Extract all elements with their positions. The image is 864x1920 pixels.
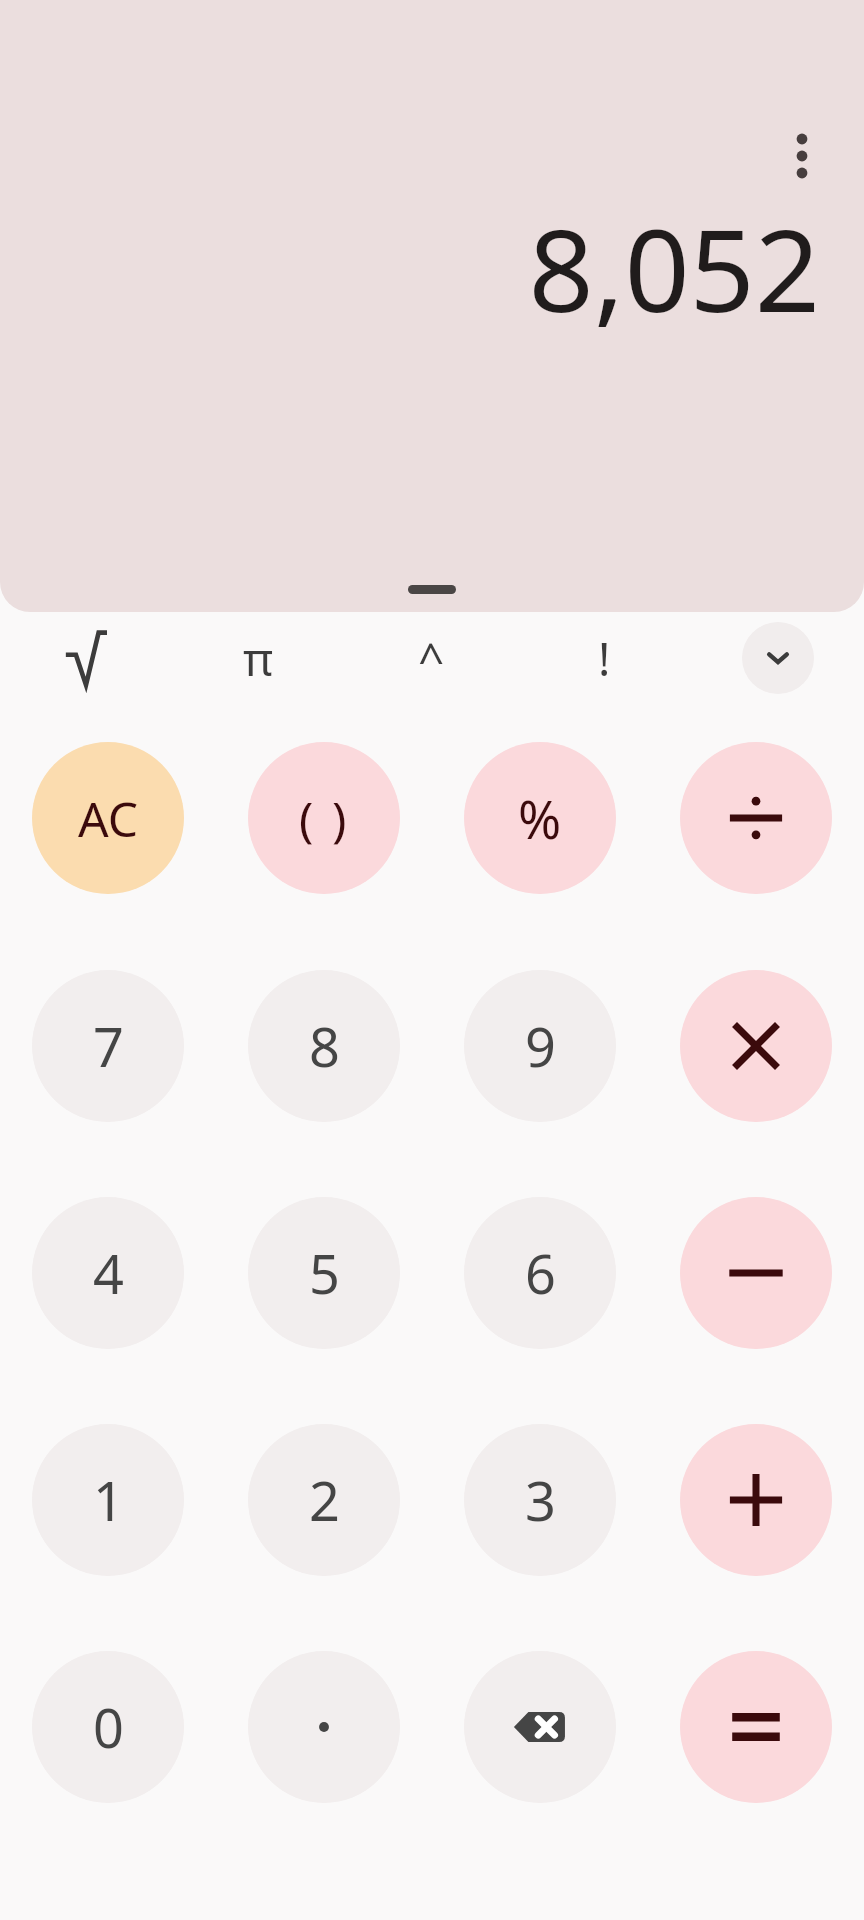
staticText: ! <box>598 627 611 690</box>
staticText: 9 <box>525 1009 556 1083</box>
button[interactable]: More options <box>752 106 852 206</box>
button[interactable]: Equals <box>680 1651 832 1803</box>
staticText: AC <box>78 786 139 851</box>
staticText: 0 <box>93 1690 124 1764</box>
staticText: 7 <box>93 1009 124 1083</box>
button[interactable]: 4 <box>32 1197 184 1349</box>
button[interactable]: Minus <box>680 1197 832 1349</box>
button[interactable]: 5 <box>248 1197 400 1349</box>
button[interactable]: Multiply <box>680 970 832 1122</box>
button[interactable]: 2 <box>248 1424 400 1576</box>
staticText: 2 <box>309 1463 340 1537</box>
staticText: π <box>243 627 274 690</box>
staticText: 5 <box>309 1236 340 1310</box>
button[interactable]: Collapse advanced keys <box>742 622 814 694</box>
staticText: ( ) <box>299 786 350 851</box>
staticText: 6 <box>525 1236 556 1310</box>
button[interactable]: π <box>172 612 345 704</box>
staticText: % <box>518 783 562 854</box>
button[interactable]: 0 <box>32 1651 184 1803</box>
button[interactable]: 9 <box>464 970 616 1122</box>
staticText: 3 <box>525 1463 556 1537</box>
button[interactable]: ! <box>518 612 691 704</box>
button[interactable]: % <box>464 742 616 894</box>
button[interactable]: Plus <box>680 1424 832 1576</box>
staticText: 8 <box>309 1009 340 1083</box>
button[interactable]: 7 <box>32 970 184 1122</box>
button[interactable]: AC <box>32 742 184 894</box>
button[interactable]: 6 <box>464 1197 616 1349</box>
staticText: 4 <box>93 1236 124 1310</box>
button[interactable]: ( ) <box>248 742 400 894</box>
button[interactable]: 3 <box>464 1424 616 1576</box>
button[interactable]: Divide <box>680 742 832 894</box>
button[interactable]: ^ <box>345 612 518 704</box>
button[interactable]: Backspace <box>464 1651 616 1803</box>
staticText: 8,052 <box>40 190 820 345</box>
button[interactable]: Decimal point <box>248 1651 400 1803</box>
button[interactable] <box>0 612 172 704</box>
staticText: 1 <box>93 1463 124 1537</box>
staticText: ^ <box>418 627 445 690</box>
button[interactable]: 1 <box>32 1424 184 1576</box>
button[interactable]: 8 <box>248 970 400 1122</box>
